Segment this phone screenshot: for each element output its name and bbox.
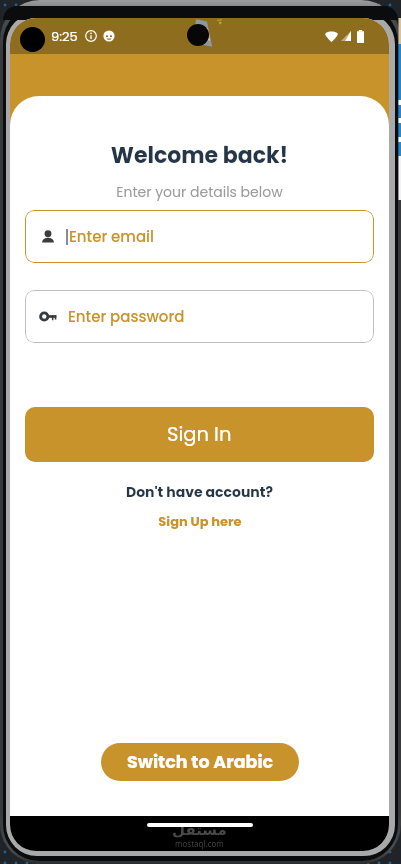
button[interactable]: Switch to Arabic [101, 743, 299, 781]
button[interactable]: Enter email [25, 210, 374, 263]
staticText: Enter email [69, 226, 155, 247]
staticText: Enter password [68, 306, 185, 327]
staticText: مستقل [172, 821, 227, 838]
staticText: Switch to Arabic [127, 750, 274, 775]
button[interactable]: Sign Up here [154, 510, 246, 532]
button[interactable]: Sign In [25, 407, 374, 462]
staticText: Enter your details below [10, 182, 389, 202]
staticText: Welcome back! [10, 140, 389, 171]
staticText: Sign In [167, 421, 232, 448]
button[interactable]: Enter password [25, 290, 374, 343]
staticText: 9:25 [51, 27, 78, 45]
staticText: mostaql.com [175, 838, 224, 849]
staticText: Don't have account? [10, 482, 389, 502]
